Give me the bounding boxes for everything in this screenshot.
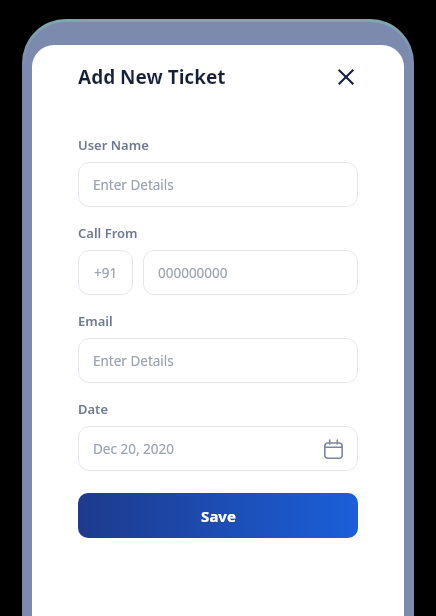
staticText: Dec 20, 2020 bbox=[93, 440, 174, 458]
staticText: Date bbox=[78, 400, 109, 418]
staticText: Save bbox=[201, 506, 236, 526]
staticText: +91 bbox=[94, 264, 118, 282]
button[interactable]: 000000000 bbox=[143, 250, 358, 295]
staticText: Call From bbox=[78, 224, 138, 242]
staticText: Enter Details bbox=[93, 352, 174, 370]
button[interactable]: Save bbox=[78, 493, 358, 538]
button[interactable]: Close bbox=[330, 61, 362, 93]
other: Pick date bbox=[324, 440, 343, 459]
staticText: User Name bbox=[78, 136, 149, 154]
button[interactable]: Enter Details bbox=[78, 338, 358, 383]
staticText: Add New Ticket bbox=[78, 64, 226, 90]
staticText: 000000000 bbox=[158, 264, 228, 282]
staticText: Email bbox=[78, 312, 113, 330]
button[interactable]: +91 bbox=[78, 250, 133, 295]
staticText: Enter Details bbox=[93, 176, 174, 194]
button[interactable]: Dec 20, 2020 bbox=[78, 426, 358, 471]
button[interactable]: Enter Details bbox=[78, 162, 358, 207]
